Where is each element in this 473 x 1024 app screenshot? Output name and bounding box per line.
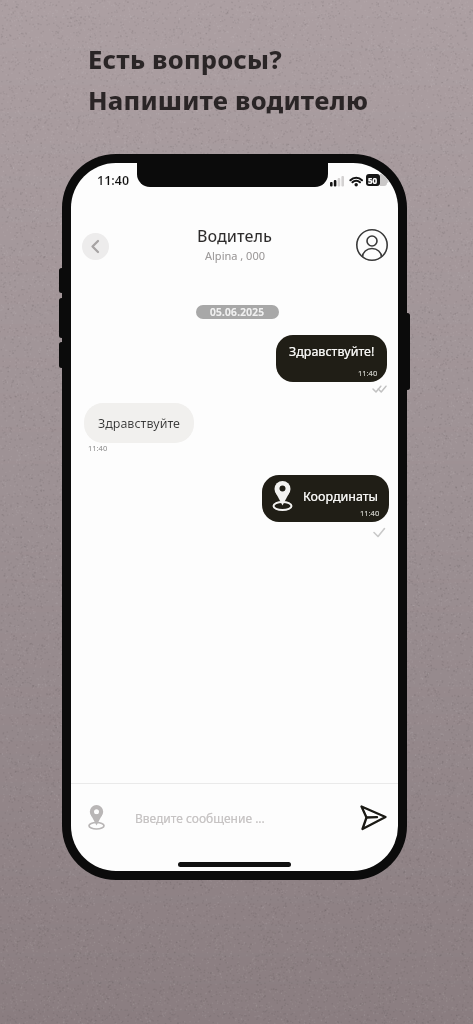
staticText: Alpina , 000 [205, 248, 265, 263]
staticText: 11:40 [358, 368, 378, 378]
staticText: Водитель [197, 225, 272, 247]
staticText: Напишите водителю [88, 83, 369, 118]
staticText: 11:40 [360, 508, 380, 518]
staticText: Координаты [303, 488, 379, 505]
staticText: 11:40 [97, 172, 130, 189]
staticText: Здравствуйте! [289, 343, 375, 360]
button[interactable]: Введите сообщение ... [71, 784, 398, 850]
button[interactable]: Координаты [262, 475, 389, 522]
button[interactable] [356, 229, 388, 261]
button[interactable] [358, 804, 392, 836]
staticText: Введите сообщение ... [135, 810, 265, 826]
staticText: Есть вопросы? [88, 42, 282, 77]
staticText: Здравствуйте [98, 415, 181, 432]
button[interactable] [82, 233, 109, 260]
staticText: 05.06.2025 [210, 305, 265, 319]
staticText: 11:40 [88, 443, 108, 453]
staticText: 50 [368, 175, 378, 186]
button[interactable]: Здравствуйте! [276, 335, 387, 382]
button[interactable]: Здравствуйте [84, 403, 194, 443]
